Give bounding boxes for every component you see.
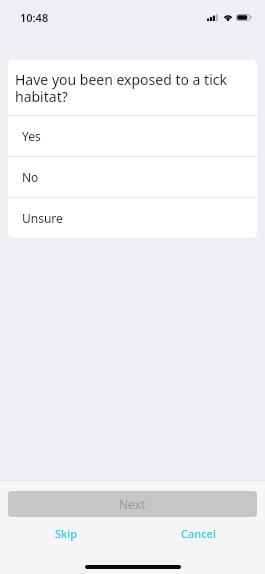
button[interactable]: Cancel <box>132 517 265 547</box>
staticText: Yes <box>22 128 41 144</box>
button[interactable]: Unsure <box>8 198 257 238</box>
button[interactable]: Next <box>8 491 257 517</box>
staticText: Unsure <box>22 210 63 226</box>
staticText: Next <box>119 496 146 512</box>
button[interactable]: Yes <box>8 116 257 156</box>
button[interactable]: No <box>8 157 257 197</box>
staticText: 10:48 <box>20 10 49 25</box>
button[interactable]: Skip <box>0 517 132 547</box>
staticText: Have you been exposed to a tick habitat? <box>15 70 249 106</box>
staticText: No <box>22 169 39 185</box>
staticText: Cancel <box>181 526 216 541</box>
staticText: Skip <box>55 526 77 541</box>
